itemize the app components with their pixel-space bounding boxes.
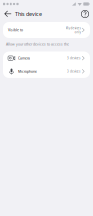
button[interactable]: Camera [3, 51, 90, 65]
staticText: This device [15, 10, 42, 18]
button[interactable]: Back [1, 7, 15, 20]
staticText: Microphone [18, 69, 37, 74]
staticText: Allow your other devices to access the [6, 42, 69, 46]
staticText: 3 devices [67, 69, 80, 73]
staticText: Camera [18, 56, 30, 60]
staticText: 3 devices [67, 56, 80, 60]
staticText: My devices only [65, 26, 80, 34]
button[interactable]: Help [78, 7, 92, 20]
button[interactable]: Visible to [3, 22, 90, 38]
button[interactable]: Microphone [3, 65, 90, 78]
staticText: Visible to [8, 28, 23, 32]
